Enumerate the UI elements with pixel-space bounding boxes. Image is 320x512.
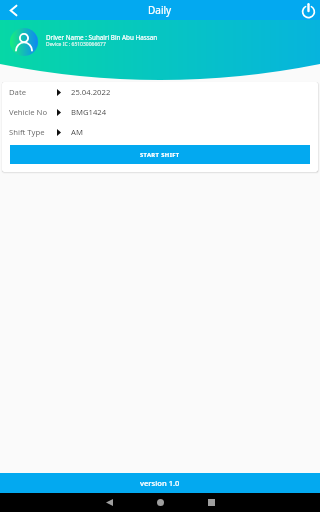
button[interactable]: Back bbox=[97, 493, 121, 512]
button[interactable]: START SHIFT bbox=[10, 145, 310, 164]
button[interactable]: Back bbox=[0, 0, 26, 20]
button[interactable]: Vehicle No bbox=[2, 102, 318, 122]
button[interactable]: Logout bbox=[296, 0, 320, 20]
staticText: Date bbox=[9, 87, 57, 97]
button[interactable]: Home bbox=[148, 493, 172, 512]
staticText: BMG1424 bbox=[71, 107, 107, 117]
button[interactable]: Shift Type bbox=[2, 122, 318, 142]
staticText: Driver Name : Suhairi Bin Abu Hassan bbox=[46, 33, 158, 42]
staticText: Vehicle No bbox=[9, 107, 57, 117]
staticText: AM bbox=[71, 127, 83, 137]
staticText: 25.04.2022 bbox=[71, 87, 111, 97]
staticText: Shift Type bbox=[9, 127, 57, 137]
button[interactable]: Profile bbox=[10, 28, 38, 56]
button[interactable]: Date bbox=[2, 82, 318, 102]
button[interactable]: Recents bbox=[199, 493, 223, 512]
staticText: version 1.0 bbox=[140, 478, 180, 488]
button[interactable]: version 1.0 bbox=[0, 473, 320, 493]
staticText: Daily bbox=[148, 3, 172, 17]
staticText: Device IC : 651030066677 bbox=[46, 41, 106, 48]
staticText: START SHIFT bbox=[140, 151, 180, 159]
